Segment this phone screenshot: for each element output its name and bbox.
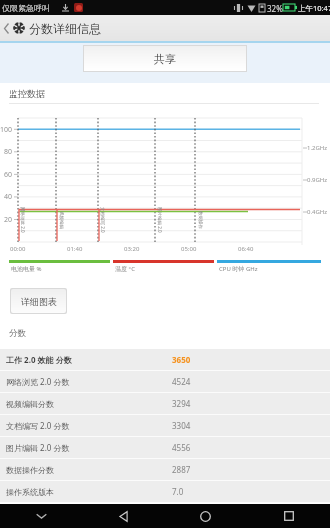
staticText: 仅限紧急呼叫: [2, 3, 50, 13]
staticText: 图片编辑 2.0: [157, 207, 163, 233]
staticText: 文档编写 2.0: [100, 207, 106, 233]
staticText: 网络浏览 2.0 分数: [6, 376, 172, 387]
staticText: 20: [4, 215, 13, 225]
staticText: 05:00: [181, 245, 197, 253]
staticText: 32%: [267, 3, 283, 14]
staticText: 详细图表: [21, 296, 57, 307]
button[interactable]: 工作 2.0 效能 分数: [0, 349, 330, 370]
staticText: 数据操作分数: [6, 465, 172, 475]
staticText: 网络浏览 2.0: [20, 207, 26, 233]
button[interactable]: 图片编辑 2.0 分数: [0, 437, 330, 458]
button[interactable]: 文档编写 2.0 分数: [0, 415, 330, 436]
staticText: 3650: [172, 354, 191, 365]
staticText: 06:40: [238, 245, 254, 253]
staticText: CPU 时钟 GHz: [219, 265, 258, 273]
button[interactable]: 详细图表: [11, 289, 66, 313]
staticText: 视频编辑分数: [6, 399, 172, 409]
staticText: 3304: [172, 420, 191, 431]
staticText: 1.2GHz: [307, 144, 328, 152]
staticText: 数据操作: [197, 211, 203, 229]
button[interactable]: Back: [0, 15, 13, 41]
button[interactable]: 网络浏览 2.0 分数: [0, 371, 330, 392]
staticText: 视频编辑: [58, 211, 64, 229]
staticText: 监控数据: [9, 88, 45, 99]
staticText: 4556: [172, 442, 191, 453]
staticText: 01:40: [67, 245, 83, 253]
staticText: 图片编辑 2.0 分数: [6, 442, 172, 453]
button[interactable]: Back: [82, 504, 164, 528]
staticText: 电池电量 %: [11, 265, 42, 273]
staticText: 分数: [9, 328, 26, 339]
staticText: 80: [4, 147, 13, 157]
button[interactable]: 共享: [84, 46, 246, 71]
staticText: 温度 °C: [115, 265, 135, 273]
button[interactable]: Hide keyboard: [0, 504, 82, 528]
staticText: 100: [0, 125, 13, 135]
staticText: 文档编写 2.0 分数: [6, 420, 172, 431]
button[interactable]: 操作系统版本: [0, 481, 330, 502]
button[interactable]: Recent apps: [247, 504, 330, 528]
button[interactable]: Home: [164, 504, 247, 528]
staticText: 40: [4, 192, 13, 202]
staticText: 0.9GHz: [307, 176, 328, 184]
staticText: 7.0: [172, 486, 184, 497]
staticText: 00:00: [10, 245, 26, 253]
staticText: 03:20: [124, 245, 140, 253]
button[interactable]: 视频编辑分数: [0, 393, 330, 414]
staticText: 60: [4, 170, 13, 180]
staticText: 共享: [154, 52, 176, 66]
staticText: 操作系统版本: [6, 487, 172, 497]
staticText: 2887: [172, 464, 191, 475]
staticText: 3294: [172, 398, 191, 409]
staticText: 工作 2.0 效能 分数: [6, 354, 172, 365]
staticText: 4524: [172, 376, 191, 387]
button[interactable]: 数据操作分数: [0, 459, 330, 480]
staticText: 分数详细信息: [29, 21, 101, 36]
staticText: 上午10:47: [298, 3, 330, 13]
staticText: 0.4GHz: [307, 208, 328, 216]
